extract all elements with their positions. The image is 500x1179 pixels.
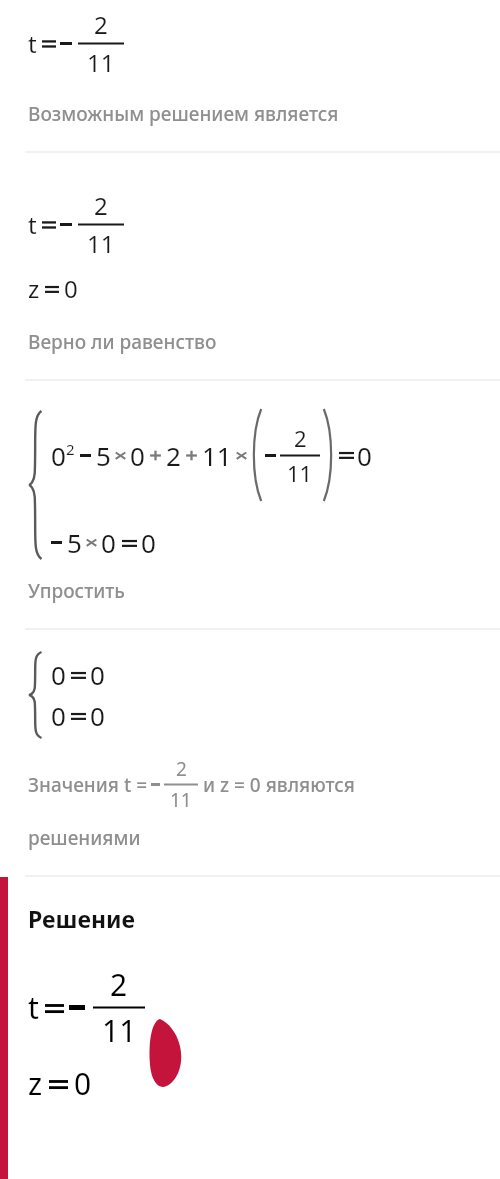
staticText: 5 bbox=[67, 525, 82, 560]
staticText: 0 bbox=[130, 438, 145, 473]
staticText: Верно ли равенство bbox=[28, 329, 217, 355]
staticText: 0 bbox=[90, 698, 105, 733]
staticText: Упростить bbox=[28, 578, 125, 604]
staticText: 0 bbox=[64, 272, 78, 305]
staticText: 0 bbox=[51, 698, 66, 733]
staticText: 0 bbox=[357, 438, 372, 473]
staticText: 0 bbox=[141, 525, 156, 560]
button[interactable]: Решение bbox=[0, 877, 500, 1179]
staticText: 0 bbox=[90, 657, 105, 692]
staticText: Решение bbox=[28, 903, 135, 934]
staticText: 2 bbox=[66, 439, 75, 459]
staticText: Значения t = bbox=[28, 772, 147, 798]
staticText: t bbox=[28, 208, 37, 241]
staticText: z bbox=[28, 1063, 43, 1104]
staticText: 2 bbox=[166, 438, 181, 473]
staticText: 2 bbox=[94, 8, 108, 41]
staticText: 2 bbox=[94, 189, 108, 222]
staticText: 2 bbox=[176, 756, 187, 782]
staticText: 0 bbox=[74, 1063, 92, 1104]
staticText: 11 bbox=[87, 227, 115, 260]
staticText: 11 bbox=[287, 458, 313, 488]
staticText: 11 bbox=[102, 1010, 137, 1051]
staticText: 2 bbox=[110, 964, 128, 1005]
staticText: t bbox=[28, 987, 39, 1028]
staticText: решениями bbox=[28, 825, 141, 851]
staticText: 0 bbox=[51, 657, 66, 692]
staticText: Возможным решением является bbox=[28, 101, 339, 127]
staticText: и z = 0 являются bbox=[203, 772, 355, 798]
staticText: 11 bbox=[87, 46, 115, 79]
staticText: 0 bbox=[101, 525, 116, 560]
staticText: 11 bbox=[170, 787, 192, 813]
staticText: z bbox=[28, 272, 40, 305]
staticText: 5 bbox=[96, 438, 111, 473]
staticText: 2 bbox=[294, 423, 307, 453]
staticText: 11 bbox=[202, 438, 232, 473]
staticText: t bbox=[28, 27, 37, 60]
staticText: 0 bbox=[51, 438, 66, 473]
